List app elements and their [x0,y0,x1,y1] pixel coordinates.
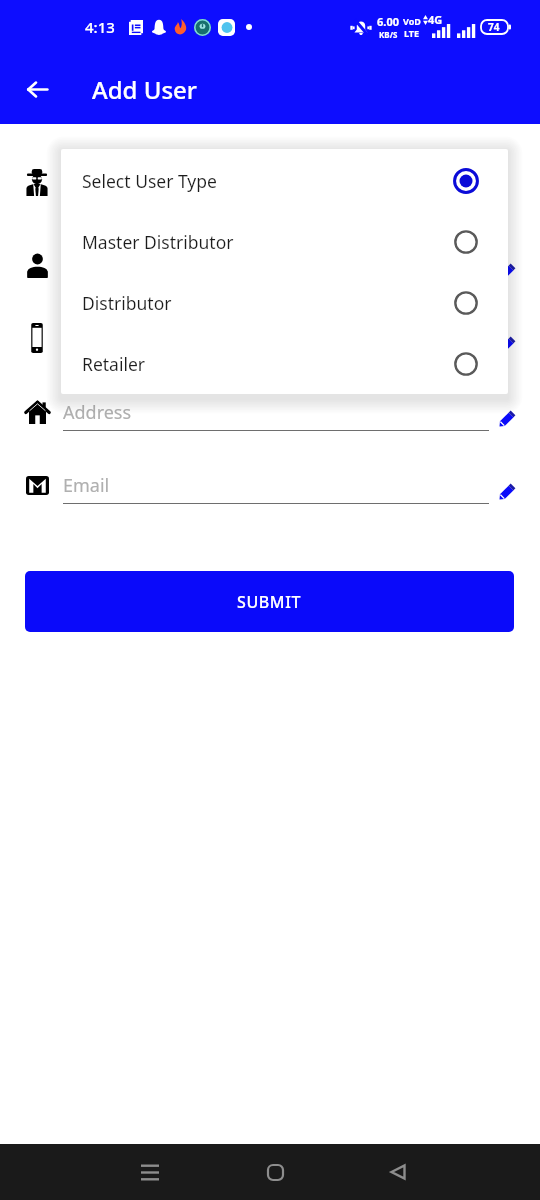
staticText: SUBMIT [237,591,302,613]
button[interactable]: Edit Address [496,409,517,430]
button[interactable]: Distributor [61,272,508,333]
button[interactable]: Edit Name [496,262,517,283]
staticText: 4:13 [85,17,115,37]
button[interactable]: User Type [20,158,490,206]
button[interactable]: Back [377,1151,419,1193]
staticText: 4G [428,12,443,27]
button[interactable]: Home [254,1151,296,1193]
staticText: User Type [63,170,148,195]
staticText: LTE [404,27,420,39]
button[interactable]: Edit Email [496,482,517,503]
button[interactable]: Select User Type [61,150,508,211]
button[interactable]: Back [12,64,62,114]
button[interactable]: Edit Mobile [496,335,517,356]
staticText: 6.00 [377,14,399,29]
button[interactable]: Email [20,461,490,509]
staticText: Address [63,400,132,425]
staticText: Master Distributor [82,230,234,254]
button[interactable]: Address [20,388,490,436]
staticText: Distributor [82,291,172,315]
staticText: VoD [403,15,421,27]
staticText: Select User Type [82,169,217,193]
staticText: KB/S [379,29,398,40]
staticText: Email [63,473,110,498]
staticText: 74 [488,20,500,34]
button[interactable]: Name [20,241,490,289]
button[interactable]: Retailer [61,333,508,394]
button[interactable]: SUBMIT [25,571,514,632]
button[interactable]: Master Distributor [61,211,508,272]
button[interactable]: Mobile [20,314,490,362]
staticText: Retailer [82,352,146,376]
button[interactable]: Recents [129,1151,171,1193]
staticText: Add User [92,73,198,106]
